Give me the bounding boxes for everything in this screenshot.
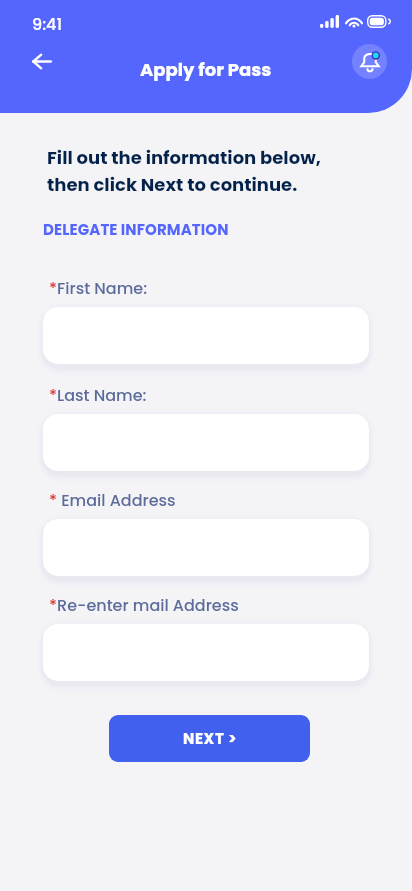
button[interactable]: Notifications bbox=[352, 44, 387, 79]
staticText: *Last Name: bbox=[49, 384, 147, 406]
button[interactable]: Back bbox=[22, 41, 62, 81]
staticText: NEXT > bbox=[183, 728, 237, 749]
staticText: 9:41 bbox=[32, 13, 63, 35]
staticText: Fill out the information below, then cli… bbox=[47, 145, 321, 197]
staticText: *Re-enter mail Address bbox=[49, 594, 239, 616]
staticText: Apply for Pass bbox=[140, 57, 272, 82]
staticText: * Email Address bbox=[49, 489, 176, 511]
button[interactable]: NEXT > bbox=[109, 715, 310, 762]
staticText: DELEGATE INFORMATION bbox=[43, 219, 229, 240]
staticText: *First Name: bbox=[49, 277, 148, 299]
